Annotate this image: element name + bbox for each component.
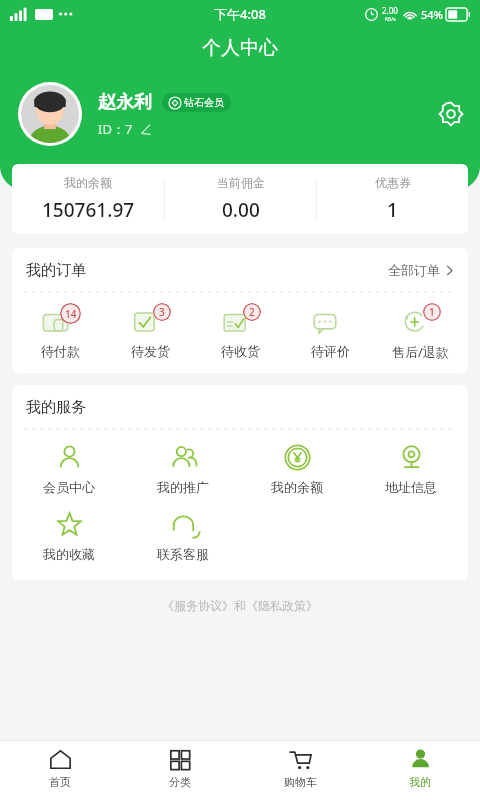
staticText: 首页 [49, 775, 71, 789]
button[interactable]: 我的收藏 [12, 511, 126, 562]
staticText: 售后/退款 [392, 343, 449, 361]
button[interactable]: 待评价 [288, 303, 372, 359]
button[interactable]: 全部订单 [388, 262, 454, 278]
button[interactable]: 联系客服 [126, 511, 240, 562]
staticText: 150761.97 [42, 197, 135, 223]
staticText: 我的收藏 [43, 546, 95, 562]
button[interactable]: 会员中心 [12, 444, 126, 495]
button[interactable]: 地址信息 [354, 444, 468, 495]
staticText: 54% [421, 7, 443, 22]
staticText: 我的余额 [64, 175, 112, 190]
staticText: KB/s [385, 16, 396, 23]
staticText: 待付款 [41, 343, 80, 359]
staticText: 优惠券 [375, 175, 411, 190]
staticText: 《服务协议》和《隐私政策》 [0, 598, 480, 613]
staticText: 个人中心 [0, 36, 480, 60]
staticText: 待评价 [311, 343, 350, 359]
staticText: 我的 [409, 775, 431, 789]
button[interactable]: 钻石会员 [162, 93, 231, 112]
button[interactable]: 我的余额 [240, 444, 354, 495]
staticText: 待收货 [221, 343, 260, 359]
button[interactable]: 我的余额 [12, 164, 164, 234]
staticText: 联系客服 [157, 546, 209, 562]
staticText: 我的服务 [26, 398, 86, 417]
staticText: 2 [249, 305, 255, 319]
staticText: 1 [429, 305, 435, 319]
button[interactable]: 1 [378, 303, 462, 361]
button[interactable]: 分类 [120, 741, 240, 795]
staticText: 下午4:08 [214, 5, 266, 23]
staticText: 1 [387, 197, 398, 223]
staticText: 0.00 [222, 197, 260, 223]
button[interactable]: 14 [18, 303, 102, 359]
button[interactable]: Settings [438, 101, 464, 127]
staticText: 我的推广 [157, 479, 209, 495]
button[interactable]: 首页 [0, 741, 120, 795]
staticText: 我的订单 [26, 261, 388, 280]
staticText: 赵永利 [98, 91, 152, 114]
button[interactable]: 我的 [360, 741, 480, 795]
button[interactable]: 2 [198, 303, 282, 359]
staticText: 分类 [169, 775, 191, 789]
staticText: 会员中心 [43, 479, 95, 495]
staticText: 我的余额 [271, 479, 323, 495]
button[interactable]: 购物车 [240, 741, 360, 795]
button[interactable]: 优惠券 [317, 164, 468, 234]
staticText: 14 [65, 307, 77, 321]
staticText: 全部订单 [388, 262, 440, 278]
button[interactable]: 当前佣金 [165, 164, 316, 234]
button[interactable]: 我的推广 [126, 444, 240, 495]
staticText: 3 [159, 305, 165, 319]
staticText: 地址信息 [385, 479, 437, 495]
staticText: ID：7 [98, 120, 133, 138]
staticText: 当前佣金 [217, 175, 265, 190]
staticText: 待发货 [131, 343, 170, 359]
button[interactable]: 3 [108, 303, 192, 359]
staticText: 钻石会员 [184, 96, 224, 109]
staticText: 购物车 [284, 775, 317, 789]
button[interactable]: Avatar [21, 85, 79, 143]
staticText: 2.00 [382, 5, 398, 16]
button[interactable]: Edit ID [139, 123, 152, 136]
